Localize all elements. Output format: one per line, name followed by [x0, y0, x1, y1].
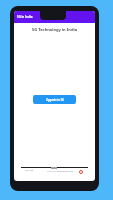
button[interactable]: Upgrade to 5G	[33, 95, 76, 104]
button[interactable]: Advertiser logo	[78, 169, 84, 175]
staticText: 5G Technology in India	[14, 27, 95, 32]
button[interactable]: 5G in India	[14, 11, 95, 23]
staticText: Visit site	[25, 169, 34, 172]
staticText: 5G in India	[17, 15, 33, 19]
staticText: This is a sample text ad.	[47, 169, 74, 172]
button[interactable]: Visit site	[14, 167, 95, 181]
staticText: Upgrade to 5G	[46, 98, 64, 101]
